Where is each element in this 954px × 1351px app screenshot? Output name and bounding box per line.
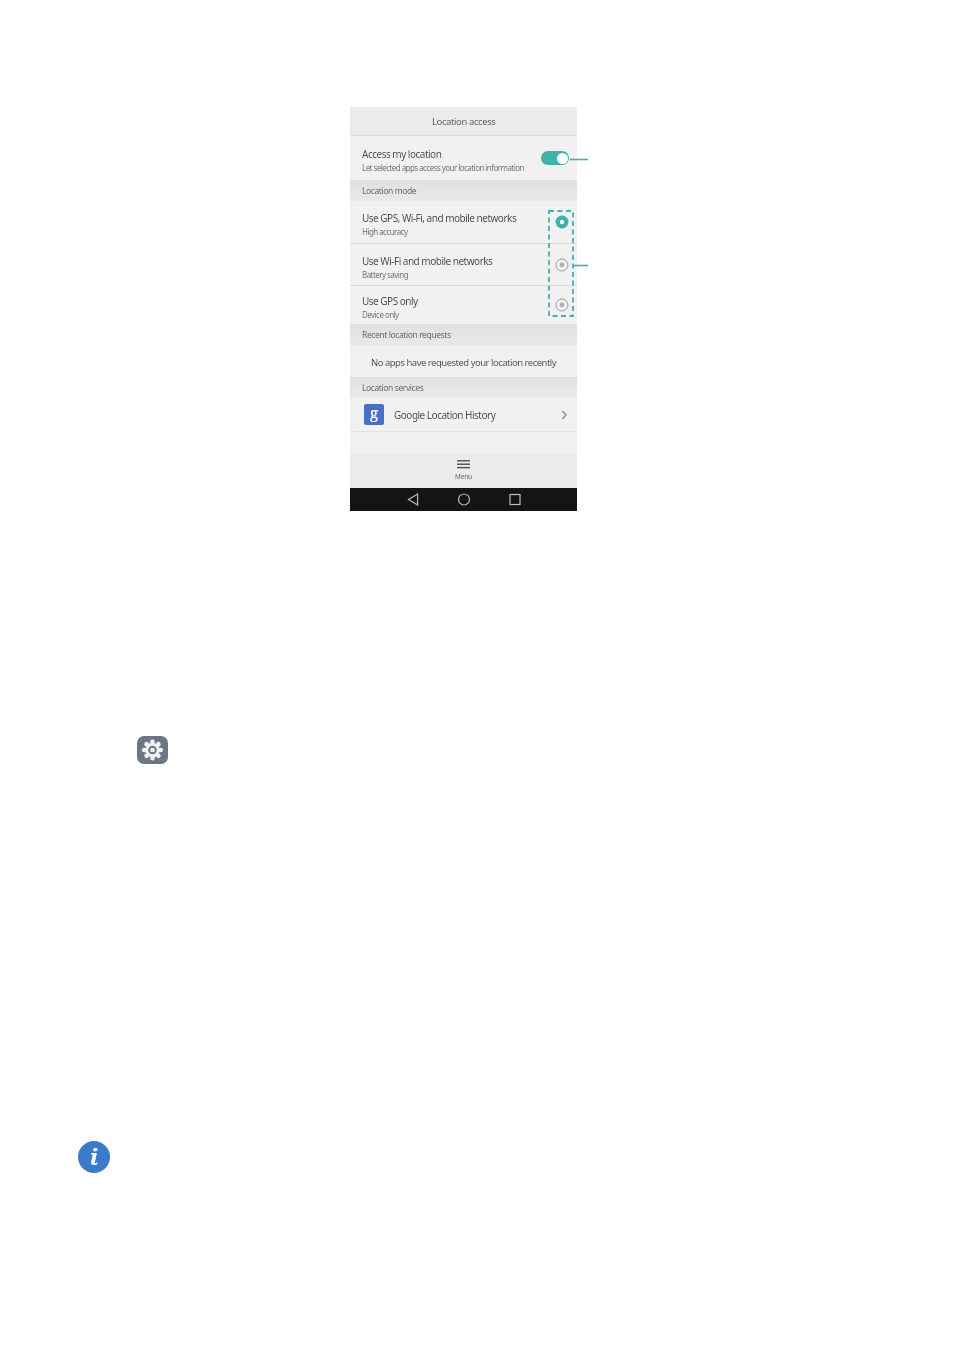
- button[interactable]: [541, 151, 569, 165]
- staticText: No apps have requested your location rec…: [371, 356, 557, 369]
- staticText: Access my location: [362, 147, 442, 161]
- staticText: Location services: [362, 382, 424, 394]
- button[interactable]: i: [78, 1141, 110, 1173]
- button[interactable]: Menu: [350, 453, 577, 488]
- button[interactable]: Access my location: [350, 136, 577, 180]
- staticText: Use Wi-Fi and mobile networks: [362, 254, 493, 268]
- button[interactable]: g: [350, 398, 577, 431]
- staticText: Let selected apps access your location i…: [362, 162, 524, 173]
- staticText: Device only: [362, 309, 399, 320]
- button[interactable]: Use Wi-Fi and mobile networks: [350, 244, 577, 285]
- button[interactable]: Use GPS only: [350, 286, 577, 324]
- button[interactable]: Use GPS, Wi-Fi, and mobile networks: [350, 201, 577, 243]
- staticText: Battery saving: [362, 269, 409, 280]
- button[interactable]: [137, 736, 168, 764]
- staticText: Use GPS only: [362, 294, 418, 308]
- staticText: i: [90, 1141, 98, 1171]
- staticText: g: [370, 404, 379, 422]
- staticText: Use GPS, Wi-Fi, and mobile networks: [362, 211, 517, 225]
- staticText: Google Location History: [394, 408, 496, 422]
- staticText: High accuracy: [362, 226, 408, 237]
- staticText: Location mode: [362, 185, 417, 197]
- staticText: Location access: [432, 115, 496, 128]
- staticText: Recent location requests: [362, 329, 451, 341]
- staticText: Menu: [455, 472, 472, 481]
